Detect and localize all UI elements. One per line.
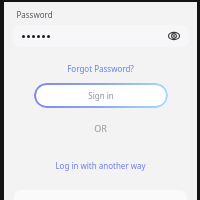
button[interactable]: Forgot Password? <box>4 63 197 74</box>
button[interactable]: Show password <box>166 28 182 44</box>
button[interactable]: Sign in <box>34 83 168 108</box>
staticText: Log in with another way <box>55 160 146 171</box>
staticText: OR <box>94 122 107 134</box>
button[interactable]: Show password <box>13 25 189 47</box>
button[interactable]: Log in with another way <box>4 160 197 171</box>
staticText: Forgot Password? <box>67 63 134 74</box>
staticText: Password <box>16 9 53 20</box>
staticText: Sign in <box>88 90 114 101</box>
